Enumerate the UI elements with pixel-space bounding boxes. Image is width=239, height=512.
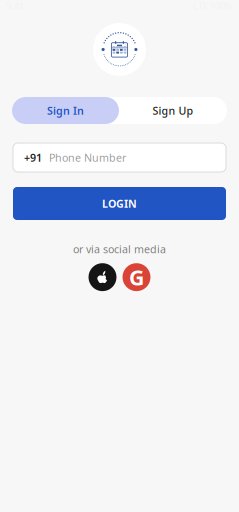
button[interactable]: LOGIN (13, 187, 226, 220)
button[interactable]: Sign In (12, 97, 119, 124)
button[interactable]: Sign Up (119, 97, 227, 124)
staticText: Phone Number (49, 150, 126, 165)
staticText: Sign In (47, 103, 84, 118)
staticText: +91 (24, 150, 42, 165)
staticText: or via social media (73, 242, 166, 256)
staticText: G (129, 263, 144, 291)
staticText: Sign Up (152, 103, 193, 118)
button[interactable]: Sign in with Apple (88, 263, 116, 291)
staticText: LOGIN (102, 196, 137, 211)
button[interactable]: Sign in with Google (122, 263, 150, 291)
